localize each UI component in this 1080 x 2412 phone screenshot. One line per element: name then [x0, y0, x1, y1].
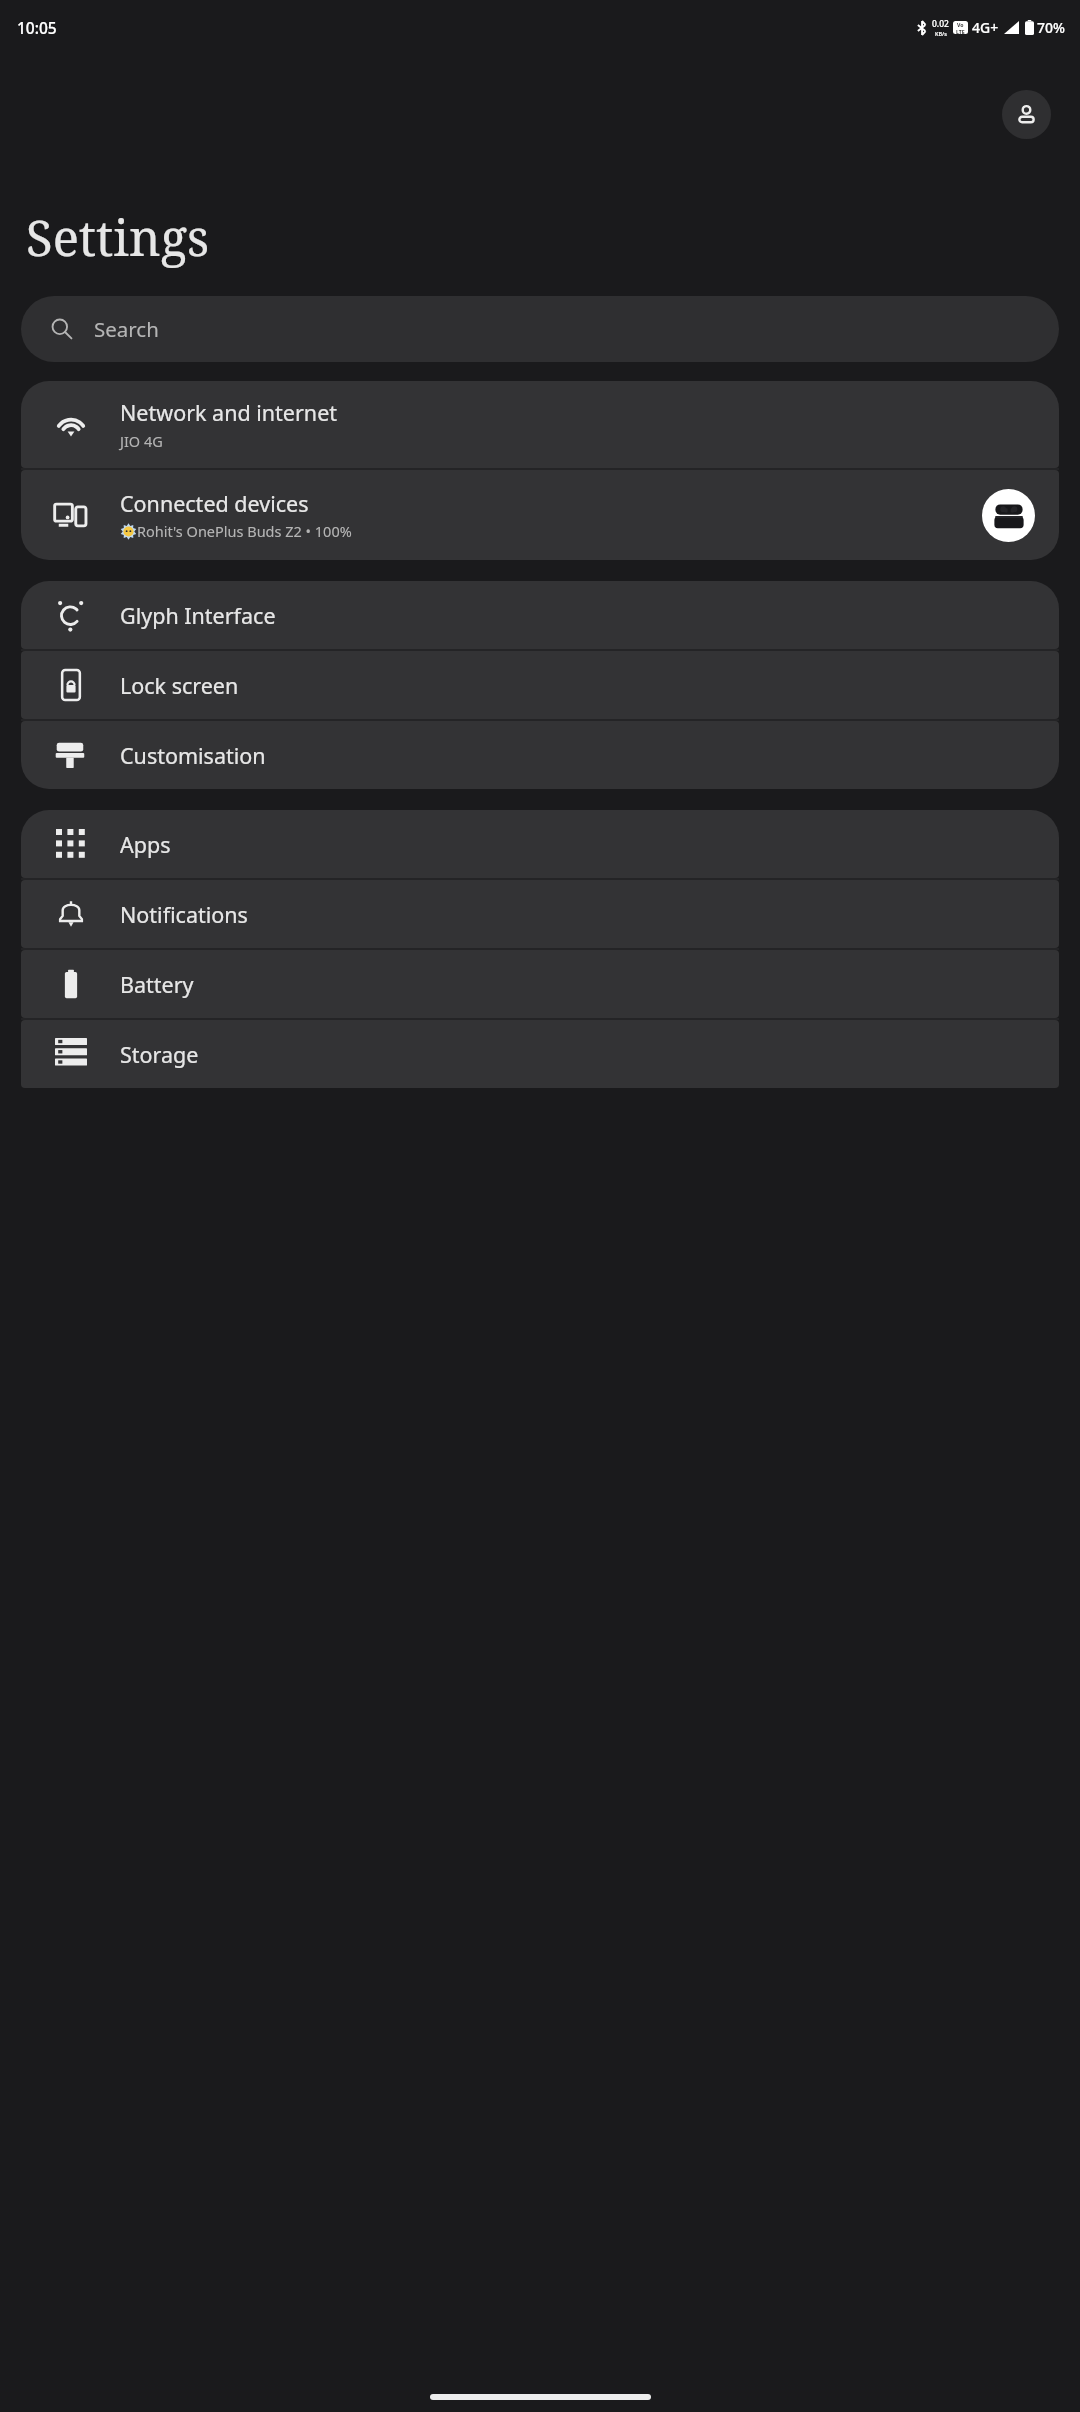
staticText: 0.02: [932, 18, 949, 30]
staticText: 70%: [1037, 18, 1065, 37]
staticText: Rohit's OnePlus Buds Z2 • 100%: [137, 521, 352, 541]
staticText: Search: [94, 315, 159, 343]
staticText: 4G+: [972, 18, 999, 37]
staticText: Battery: [120, 970, 194, 999]
button[interactable]: Glyph Interface: [21, 581, 1059, 649]
staticText: Settings: [26, 204, 210, 271]
button[interactable]: Account: [1002, 90, 1051, 139]
staticText: Customisation: [120, 741, 266, 770]
staticText: LTE: [956, 28, 965, 34]
staticText: Glyph Interface: [120, 601, 276, 630]
button[interactable]: Notifications: [21, 880, 1059, 948]
staticText: Lock screen: [120, 671, 239, 700]
button[interactable]: Search: [21, 296, 1059, 362]
staticText: KB/s: [935, 30, 947, 37]
staticText: Network and internet: [120, 398, 338, 427]
button[interactable]: Connected devices: [21, 470, 1059, 560]
button[interactable]: Customisation: [21, 721, 1059, 789]
staticText: Apps: [120, 830, 171, 859]
button[interactable]: Lock screen: [21, 651, 1059, 719]
button[interactable]: Apps: [21, 810, 1059, 878]
staticText: Connected devices: [120, 489, 309, 518]
button[interactable]: Network and internet: [21, 381, 1059, 468]
button[interactable]: Storage: [21, 1020, 1059, 1088]
staticText: JIO 4G: [120, 431, 163, 451]
staticText: Notifications: [120, 900, 248, 929]
staticText: 10:05: [17, 17, 57, 38]
staticText: Vo: [957, 21, 964, 28]
button[interactable]: Battery: [21, 950, 1059, 1018]
staticText: Storage: [120, 1040, 199, 1069]
